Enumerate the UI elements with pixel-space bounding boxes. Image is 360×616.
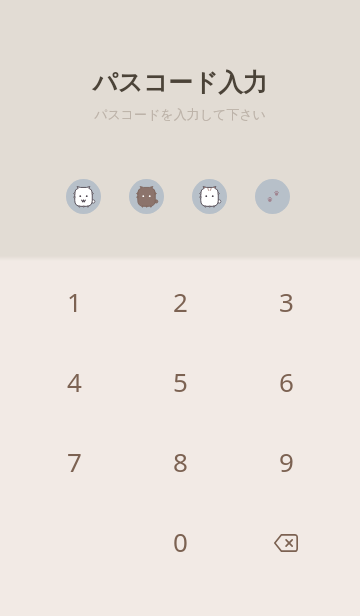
button[interactable]: 0	[127, 501, 233, 581]
button[interactable]: 2	[127, 261, 233, 341]
button[interactable]: 5	[127, 341, 233, 421]
button[interactable]: 3	[233, 261, 339, 341]
staticText: 9	[279, 444, 294, 479]
staticText: 5	[173, 364, 188, 399]
staticText: パスコード入力	[92, 67, 268, 98]
button[interactable]: Passcode digit	[255, 179, 290, 214]
staticText: 0	[173, 524, 188, 559]
staticText: 3	[279, 284, 294, 319]
button[interactable]: 9	[233, 421, 339, 501]
staticText: 2	[173, 284, 188, 319]
button[interactable]: Passcode digit	[192, 179, 227, 214]
button[interactable]: 6	[233, 341, 339, 421]
staticText: 7	[67, 444, 82, 479]
button[interactable]: 8	[127, 421, 233, 501]
button[interactable]: Passcode digit	[129, 179, 164, 214]
button[interactable]: Delete	[233, 501, 339, 581]
staticText: 6	[279, 364, 294, 399]
button[interactable]: 4	[21, 341, 127, 421]
staticText: 8	[173, 444, 188, 479]
staticText: 4	[67, 364, 82, 399]
staticText: パスコードを入力して下さい	[94, 106, 266, 122]
button[interactable]: 7	[21, 421, 127, 501]
staticText: 1	[67, 284, 82, 319]
button[interactable]: 1	[21, 261, 127, 341]
button[interactable]: Passcode digit	[66, 179, 101, 214]
